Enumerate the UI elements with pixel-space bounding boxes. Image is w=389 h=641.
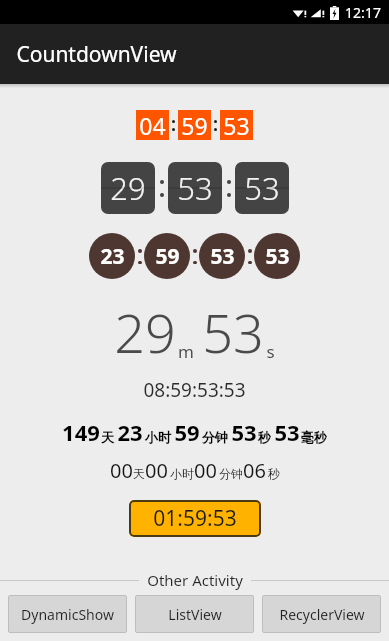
staticText: 53: [223, 110, 250, 140]
staticText: 29: [114, 295, 176, 369]
staticText: 53: [177, 167, 213, 209]
staticText: 秒: [268, 466, 280, 481]
staticText: 小时: [145, 429, 171, 445]
staticText: s: [266, 340, 275, 363]
staticText: 53: [231, 417, 257, 447]
staticText: 149: [62, 417, 100, 447]
staticText: 06: [243, 457, 266, 484]
staticText: 53: [265, 242, 290, 271]
staticText: 53: [202, 295, 264, 369]
button[interactable]: 01:59:53: [129, 500, 261, 537]
staticText: DynamicShow: [21, 605, 114, 624]
staticText: 53: [210, 242, 235, 271]
staticText: 毫秒: [301, 429, 327, 445]
staticText: 59: [181, 110, 208, 140]
button[interactable]: ListView: [135, 595, 254, 633]
staticText: m: [178, 340, 194, 363]
staticText: 53: [274, 417, 300, 447]
staticText: 秒: [258, 429, 271, 445]
staticText: 12:17: [345, 3, 381, 22]
staticText: 00: [145, 457, 168, 484]
staticText: 分钟: [219, 466, 243, 481]
staticText: 59: [174, 417, 200, 447]
staticText: 04: [139, 110, 166, 140]
staticText: 59: [155, 242, 180, 271]
button[interactable]: RecyclerView: [262, 595, 381, 633]
staticText: RecyclerView: [279, 605, 365, 624]
staticText: 00: [110, 457, 133, 484]
staticText: 23: [100, 242, 125, 271]
staticText: ListView: [168, 605, 222, 624]
staticText: 01:59:53: [153, 504, 237, 533]
button[interactable]: DynamicShow: [8, 595, 127, 633]
staticText: 天: [133, 466, 145, 481]
staticText: 08:59:53:53: [143, 377, 246, 403]
staticText: 小时: [170, 466, 194, 481]
staticText: 23: [117, 417, 143, 447]
staticText: 29: [110, 167, 146, 209]
staticText: 00: [194, 457, 217, 484]
staticText: 53: [244, 167, 280, 209]
staticText: 天: [101, 429, 114, 445]
staticText: Other Activity: [147, 570, 243, 590]
staticText: CountdownView: [16, 40, 177, 69]
staticText: 分钟: [202, 429, 228, 445]
